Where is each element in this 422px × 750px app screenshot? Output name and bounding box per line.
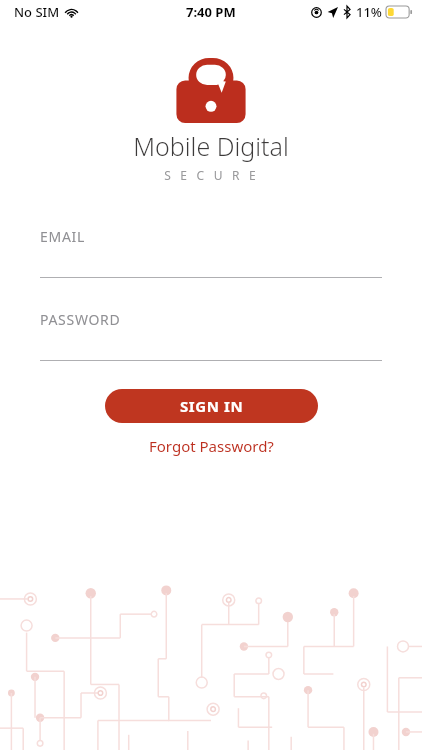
staticText: No SIM [14,3,60,21]
staticText: S E C U R E [164,167,259,183]
staticText: Mobile Digital [133,129,289,163]
staticText: 11% [356,3,382,21]
staticText: Forgot Password? [149,436,274,456]
staticText: SIGN IN [180,396,244,416]
staticText: 7:40 PM [186,3,236,21]
staticText: EMAIL [40,227,86,246]
button[interactable]: Forgot Password? [141,433,282,459]
button[interactable]: EMAIL [0,227,422,278]
staticText: PASSWORD [40,310,121,329]
button[interactable]: SIGN IN [105,389,318,423]
button[interactable]: PASSWORD [0,310,422,361]
